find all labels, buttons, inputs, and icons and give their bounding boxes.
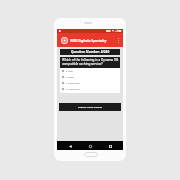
button[interactable]: a. EMR xyxy=(60,68,120,74)
button[interactable]: b. Redis xyxy=(60,74,120,80)
staticText: Question Number: 4/240 xyxy=(71,50,110,54)
staticText: a. EMR xyxy=(66,70,73,73)
button[interactable]: Recent apps xyxy=(107,142,113,150)
staticText: c. Elasticache xyxy=(66,82,80,85)
button[interactable]: Home xyxy=(87,142,93,150)
staticText: d. Memcache xyxy=(66,88,80,91)
staticText: Which of the following is a Dynamo DB co… xyxy=(62,58,119,65)
button[interactable]: More options xyxy=(116,35,121,46)
button[interactable]: d. Memcache xyxy=(60,86,120,92)
staticText: SUBMIT YOUR CHOICE xyxy=(78,106,103,109)
staticText: b. Redis xyxy=(66,76,75,79)
button[interactable]: SUBMIT YOUR CHOICE xyxy=(59,103,121,111)
button[interactable]: c. Elasticache xyxy=(60,80,120,86)
staticText: RRB Digitala Specialty xyxy=(70,38,107,43)
button[interactable]: Back xyxy=(67,142,73,150)
